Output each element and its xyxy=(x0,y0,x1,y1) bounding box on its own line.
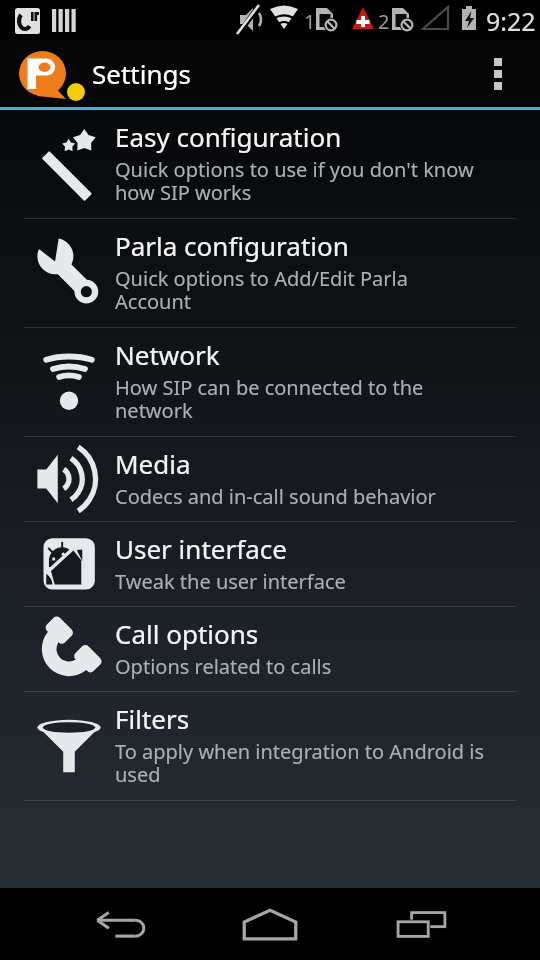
button[interactable]: Filters xyxy=(0,692,540,800)
staticText: Media xyxy=(115,446,191,481)
staticText: Parla configuration xyxy=(115,228,349,263)
staticText: Settings xyxy=(92,56,191,91)
staticText: 1 xyxy=(304,8,316,35)
staticText: 9:22 xyxy=(486,4,536,38)
staticText: 2 xyxy=(378,8,390,35)
staticText: Filters xyxy=(115,701,190,736)
button[interactable]: Call options xyxy=(0,607,540,691)
button[interactable]: Media xyxy=(0,437,540,521)
staticText: Quick options to Add/Edit Parla Account xyxy=(115,265,486,315)
button[interactable]: Network xyxy=(0,328,540,436)
staticText: User interface xyxy=(115,531,287,566)
staticText: Easy configuration xyxy=(115,119,342,154)
button[interactable]: Back xyxy=(60,888,180,960)
button[interactable]: Home xyxy=(210,888,330,960)
button[interactable]: Easy configuration xyxy=(0,110,540,218)
staticText: How SIP can be connected to the network xyxy=(115,374,486,424)
button[interactable]: User interface xyxy=(0,522,540,606)
staticText: Codecs and in-call sound behavior xyxy=(115,483,436,510)
staticText: Options related to calls xyxy=(115,653,332,680)
staticText: Quick options to use if you don't know h… xyxy=(115,156,486,206)
button[interactable]: More options xyxy=(476,40,520,107)
staticText: To apply when integration to Android is … xyxy=(115,738,486,788)
staticText: Call options xyxy=(115,616,259,651)
staticText: Network xyxy=(115,337,220,372)
staticText: Tweak the user interface xyxy=(115,568,346,595)
button[interactable]: Parla configuration xyxy=(0,219,540,327)
button[interactable]: Recent apps xyxy=(362,888,482,960)
